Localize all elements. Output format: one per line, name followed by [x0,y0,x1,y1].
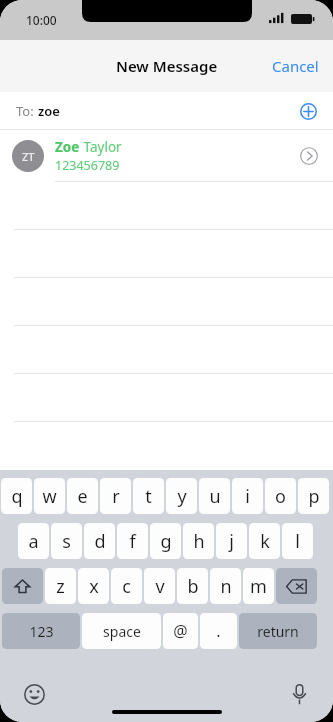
staticText: z [56,574,65,599]
button[interactable]: a [18,523,49,559]
button[interactable]: y [166,478,197,514]
button[interactable]: o [265,478,296,514]
staticText: c [122,574,131,599]
staticText: d [94,529,106,554]
staticText: m [250,574,267,599]
button[interactable]: n [210,568,241,604]
button[interactable]: s [51,523,82,559]
button[interactable]: q [1,478,32,514]
button[interactable]: l [282,523,313,559]
staticText: e [77,484,88,509]
button[interactable]: ZT [0,130,333,182]
staticText: n [220,574,232,599]
button[interactable]: e [67,478,98,514]
button[interactable]: Shift [2,568,43,604]
button[interactable]: return [239,613,317,649]
button[interactable]: Contact details [295,142,323,170]
staticText: return [257,622,299,641]
staticText: r [112,484,120,509]
staticText: . [216,620,221,642]
staticText: h [193,529,205,554]
button[interactable]: . [200,613,237,649]
button[interactable]: z [45,568,76,604]
button[interactable]: @ [163,613,198,649]
button[interactable]: Emoji [18,678,50,710]
button[interactable]: m [243,568,274,604]
staticText: g [160,529,172,554]
button[interactable]: u [199,478,230,514]
staticText: Cancel [272,56,319,76]
staticText: zoe [38,102,60,120]
staticText: u [209,484,221,509]
button[interactable]: f [117,523,148,559]
staticText: ZT [22,149,35,164]
button[interactable]: Add contact [293,96,323,126]
staticText: b [187,574,199,599]
staticText: 123456789 [55,157,120,174]
button[interactable]: d [84,523,115,559]
button[interactable]: b [177,568,208,604]
staticText: t [145,484,152,509]
staticText: 10:00 [26,12,57,28]
button[interactable]: Cancel [258,48,333,84]
staticText: o [275,484,286,509]
button[interactable]: h [183,523,214,559]
staticText: Taylor [80,138,122,156]
staticText: a [28,529,39,554]
button[interactable]: t [133,478,164,514]
staticText: v [155,574,165,599]
button[interactable]: j [216,523,247,559]
staticText: q [11,484,23,509]
button[interactable]: p [298,478,329,514]
button[interactable]: g [150,523,181,559]
button[interactable]: x [78,568,109,604]
button[interactable]: c [111,568,142,604]
button[interactable]: w [34,478,65,514]
staticText: New Message [116,56,218,76]
staticText: k [260,529,270,554]
staticText: s [62,529,71,554]
staticText: p [308,484,320,509]
button[interactable]: i [232,478,263,514]
staticText: f [129,529,136,554]
button[interactable]: r [100,478,131,514]
button[interactable]: v [144,568,175,604]
staticText: space [103,622,141,641]
button[interactable]: Dictation [283,678,315,710]
staticText: @ [173,620,188,642]
staticText: j [229,529,234,554]
staticText: l [295,529,300,554]
button[interactable]: Backspace [276,568,317,604]
staticText: 123 [29,622,54,641]
staticText: To: [16,102,38,120]
staticText: y [177,484,187,509]
staticText: x [89,574,99,599]
button[interactable]: k [249,523,280,559]
button[interactable]: 123 [2,613,80,649]
staticText: Zoe [55,138,80,156]
button[interactable]: space [82,613,161,649]
staticText: w [42,484,57,509]
staticText: i [245,484,250,509]
